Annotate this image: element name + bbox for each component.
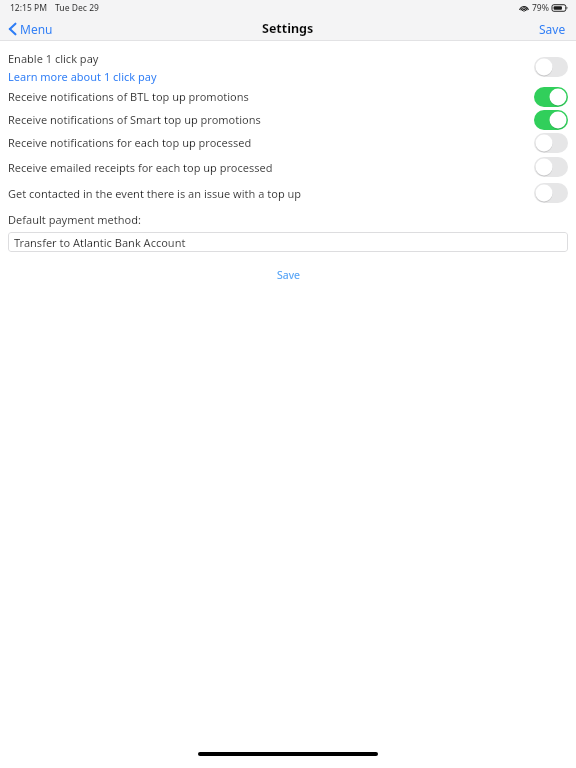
staticText: Transfer to Atlantic Bank Account [14,235,186,250]
button[interactable]: Enable 1 click pay [534,57,568,77]
staticText: Save [277,268,300,282]
button[interactable]: Get contacted in the event there is an i… [534,183,568,203]
button[interactable]: Get contacted in the event there is an i… [0,180,576,206]
button[interactable]: Save [263,265,314,285]
button[interactable]: Transfer to Atlantic Bank Account [8,232,568,252]
staticText: Default payment method: [8,212,141,227]
button[interactable]: Learn more about 1 click pay [8,69,157,84]
button[interactable]: Enable 1 click pay [0,49,576,85]
staticText: Receive notifications for each top up pr… [8,135,252,150]
staticText: Receive notifications of Smart top up pr… [8,112,261,127]
staticText: Tue Dec 29 [55,2,99,14]
staticText: Get contacted in the event there is an i… [8,186,302,201]
staticText: Receive emailed receipts for each top up… [8,160,273,175]
button[interactable]: Receive notifications of BTL top up prom… [534,87,568,107]
button[interactable]: Receive notifications of Smart top up pr… [0,108,576,131]
staticText: Settings [262,20,314,37]
button[interactable]: Receive emailed receipts for each top up… [0,154,576,180]
staticText: Receive notifications of BTL top up prom… [8,89,249,104]
button[interactable]: Receive notifications for each top up pr… [534,133,568,153]
staticText: Enable 1 click pay [8,51,99,66]
button[interactable]: Save [535,18,570,40]
staticText: Menu [20,21,53,37]
staticText: 79% [532,2,549,14]
staticText: Save [539,21,566,37]
staticText: 12:15 PM [10,2,47,14]
button[interactable]: Receive notifications of BTL top up prom… [0,85,576,108]
button[interactable]: Receive emailed receipts for each top up… [534,157,568,177]
button[interactable]: Receive notifications of Smart top up pr… [534,110,568,130]
button[interactable]: Menu [6,18,56,40]
button[interactable]: Receive notifications for each top up pr… [0,131,576,154]
